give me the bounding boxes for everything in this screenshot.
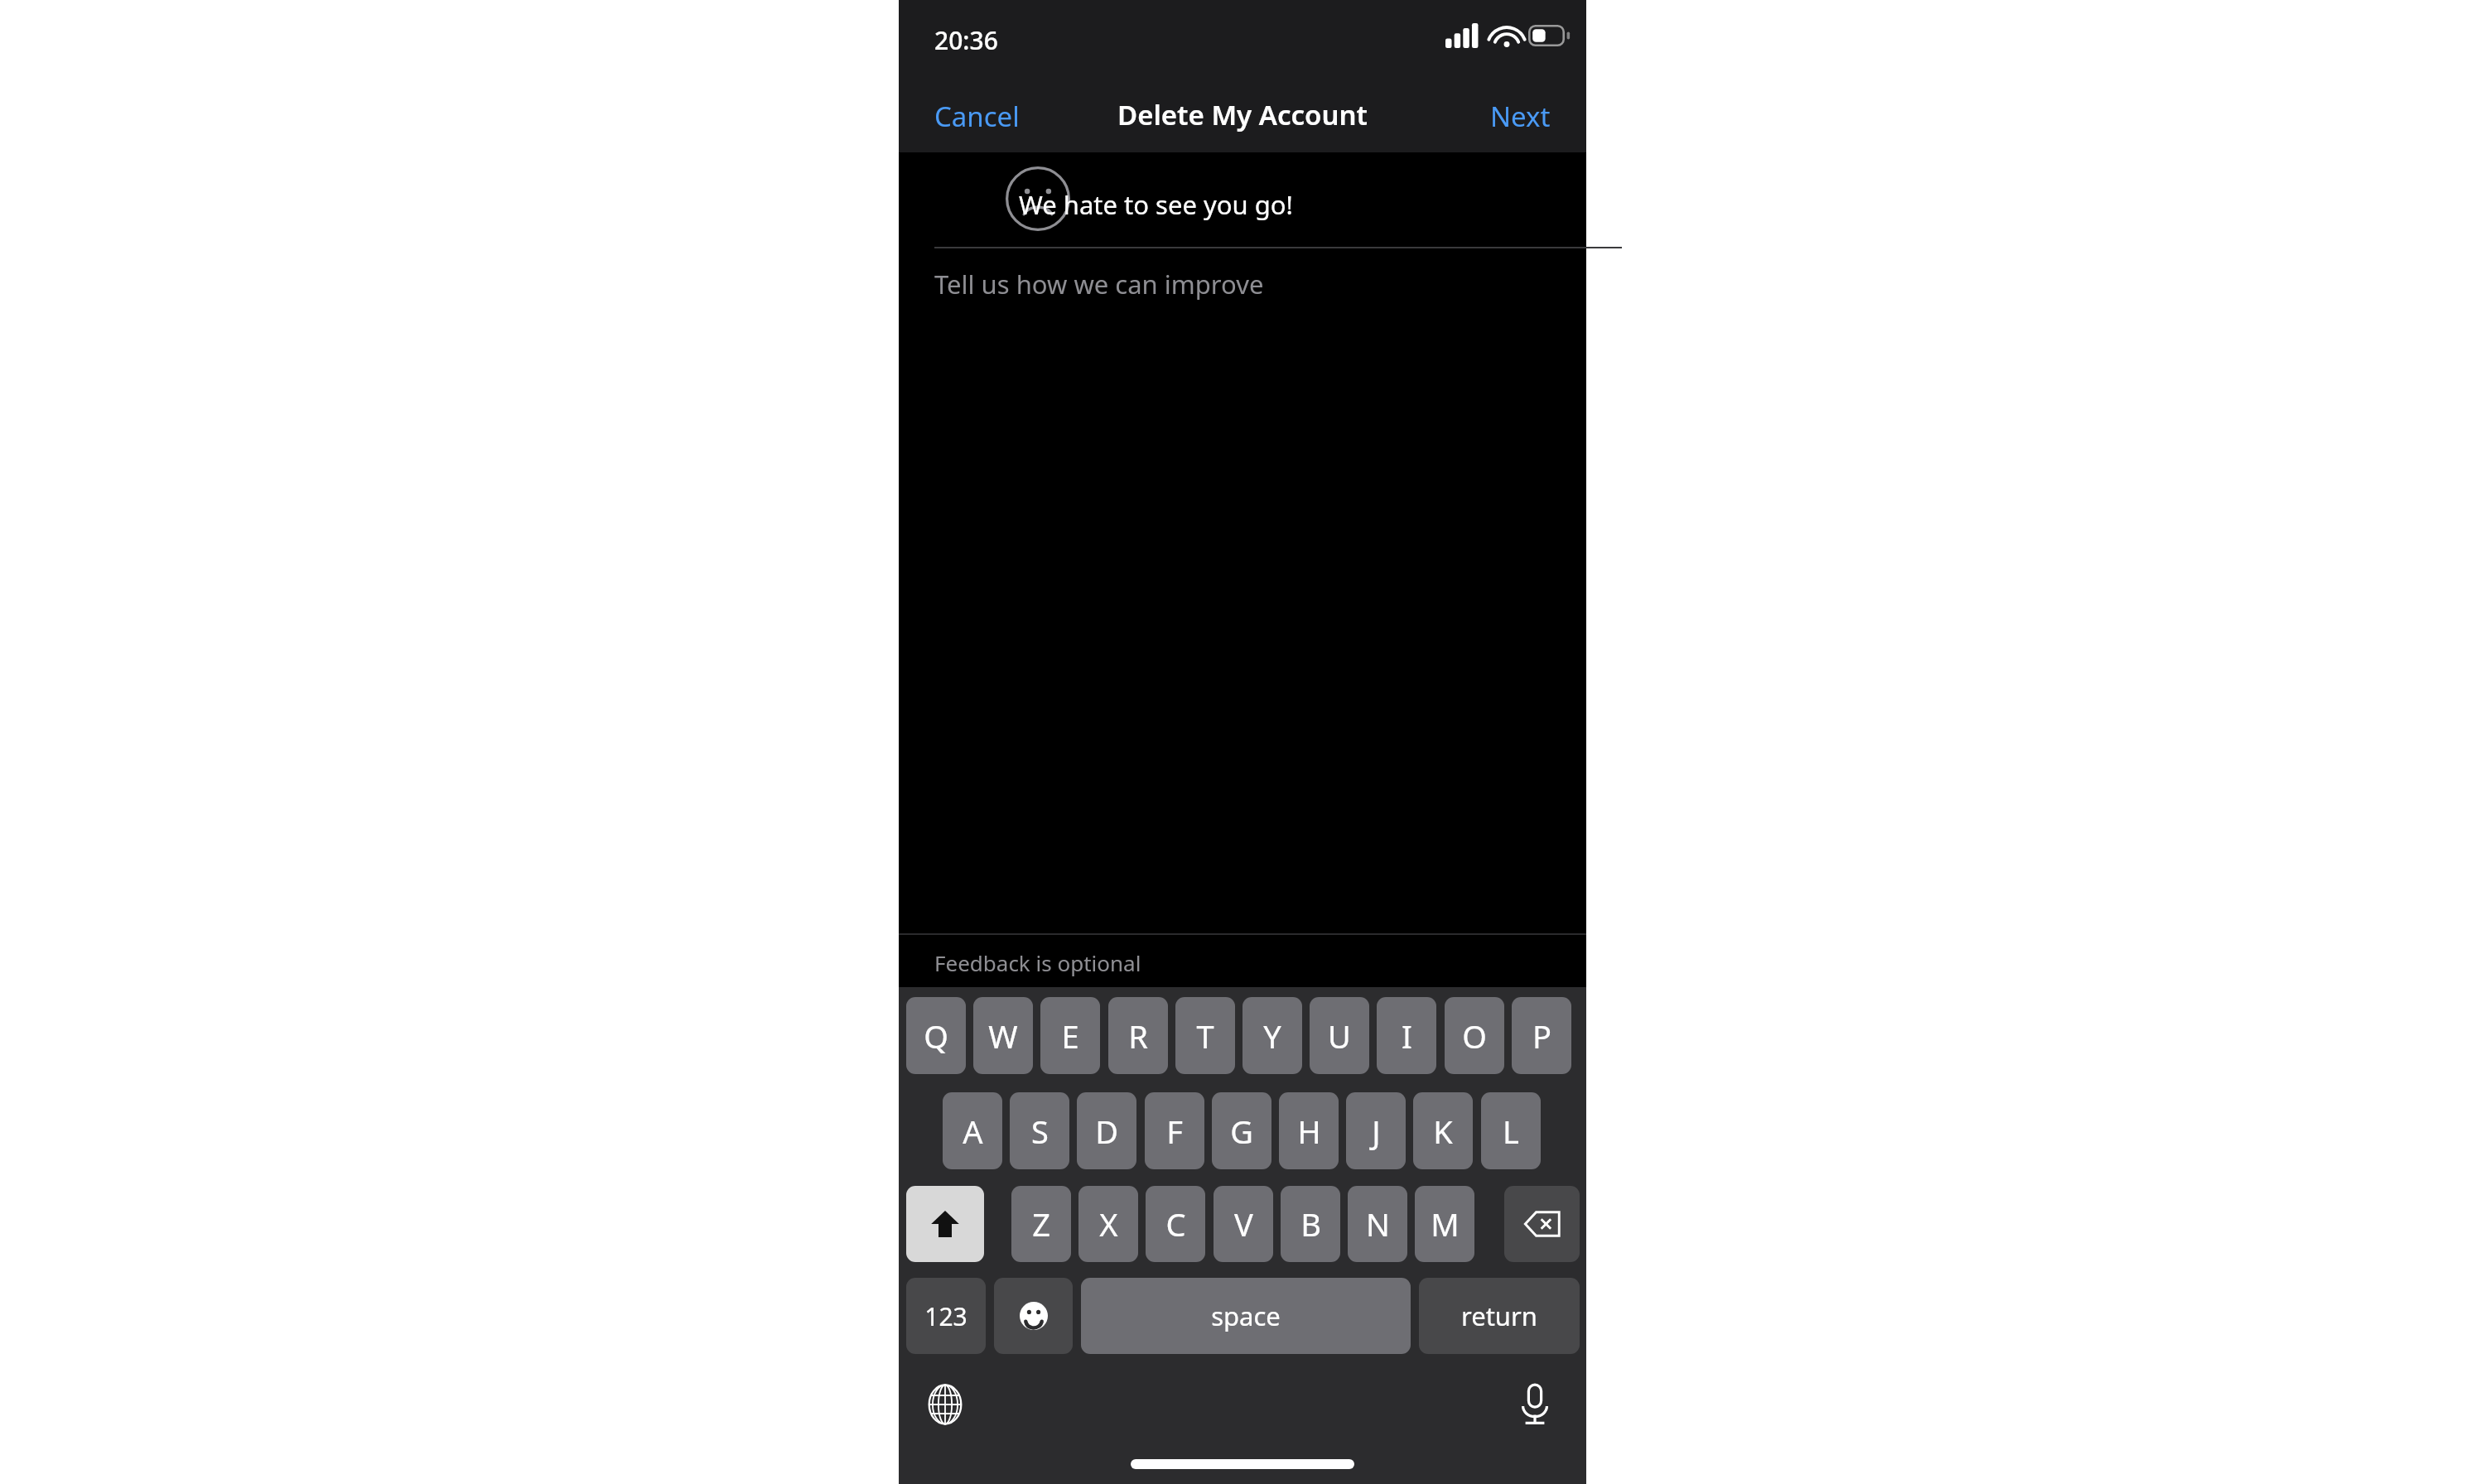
staticText: T: [1196, 1014, 1214, 1058]
staticText: N: [1366, 1202, 1390, 1245]
button[interactable]: M: [1415, 1186, 1474, 1262]
staticText: P: [1532, 1014, 1551, 1058]
button[interactable]: return: [1419, 1278, 1580, 1354]
staticText: I: [1402, 1014, 1412, 1058]
button[interactable]: Backspace: [1504, 1186, 1580, 1262]
staticText: C: [1165, 1202, 1186, 1245]
button[interactable]: Q: [906, 997, 966, 1074]
button[interactable]: E: [1040, 997, 1100, 1074]
staticText: Tell us how we can improve: [934, 267, 1264, 301]
staticText: R: [1128, 1014, 1148, 1058]
staticText: X: [1099, 1202, 1118, 1245]
button[interactable]: N: [1348, 1186, 1407, 1262]
staticText: Z: [1032, 1202, 1050, 1245]
staticText: 20:36: [934, 23, 998, 57]
staticText: H: [1297, 1110, 1321, 1153]
staticText: D: [1095, 1110, 1118, 1153]
staticText: L: [1503, 1110, 1519, 1153]
staticText: J: [1372, 1110, 1381, 1153]
button[interactable]: X: [1078, 1186, 1138, 1262]
staticText: K: [1433, 1110, 1453, 1153]
button[interactable]: K: [1413, 1092, 1473, 1169]
button[interactable]: H: [1279, 1092, 1339, 1169]
button[interactable]: J: [1346, 1092, 1406, 1169]
button[interactable]: O: [1445, 997, 1504, 1074]
button[interactable]: C: [1146, 1186, 1205, 1262]
button[interactable]: B: [1281, 1186, 1340, 1262]
staticText: M: [1431, 1202, 1460, 1245]
button[interactable]: Switch keyboard: [904, 1370, 987, 1439]
button[interactable]: space: [1081, 1278, 1411, 1354]
button[interactable]: 123: [906, 1278, 986, 1354]
staticText: B: [1300, 1202, 1321, 1245]
button[interactable]: Z: [1011, 1186, 1071, 1262]
button[interactable]: Cancel: [899, 89, 1055, 139]
button[interactable]: P: [1512, 997, 1571, 1074]
staticText: A: [963, 1110, 983, 1153]
button[interactable]: S: [1010, 1092, 1069, 1169]
button[interactable]: Dictate: [1493, 1370, 1576, 1439]
staticText: Feedback is optional: [934, 948, 1141, 977]
staticText: E: [1061, 1014, 1079, 1058]
other: Sad face: [1006, 166, 1070, 231]
staticText: S: [1031, 1110, 1049, 1153]
button[interactable]: Shift: [906, 1186, 984, 1262]
button[interactable]: T: [1175, 997, 1235, 1074]
button[interactable]: Next: [1455, 89, 1586, 139]
button[interactable]: Emoji: [994, 1278, 1073, 1354]
staticText: W: [988, 1014, 1018, 1058]
staticText: Delete My Account: [1117, 96, 1368, 133]
staticText: Cancel: [934, 98, 1020, 131]
button[interactable]: D: [1077, 1092, 1136, 1169]
button[interactable]: W: [973, 997, 1033, 1074]
button[interactable]: Y: [1242, 997, 1302, 1074]
staticText: 123: [924, 1299, 967, 1333]
staticText: O: [1462, 1014, 1487, 1058]
button[interactable]: V: [1214, 1186, 1273, 1262]
button[interactable]: L: [1481, 1092, 1541, 1169]
button[interactable]: I: [1377, 997, 1436, 1074]
staticText: return: [1461, 1298, 1537, 1333]
staticText: Q: [924, 1014, 948, 1058]
staticText: We hate to see you go!: [1019, 187, 1293, 222]
staticText: Y: [1263, 1014, 1281, 1058]
button[interactable]: F: [1145, 1092, 1204, 1169]
staticText: F: [1166, 1110, 1183, 1153]
staticText: G: [1230, 1110, 1253, 1153]
staticText: V: [1234, 1202, 1253, 1245]
button[interactable]: U: [1310, 997, 1369, 1074]
staticText: U: [1328, 1014, 1351, 1058]
button[interactable]: A: [943, 1092, 1002, 1169]
staticText: Next: [1490, 98, 1551, 131]
staticText: space: [1211, 1298, 1281, 1333]
button[interactable]: G: [1212, 1092, 1271, 1169]
button[interactable]: R: [1108, 997, 1168, 1074]
